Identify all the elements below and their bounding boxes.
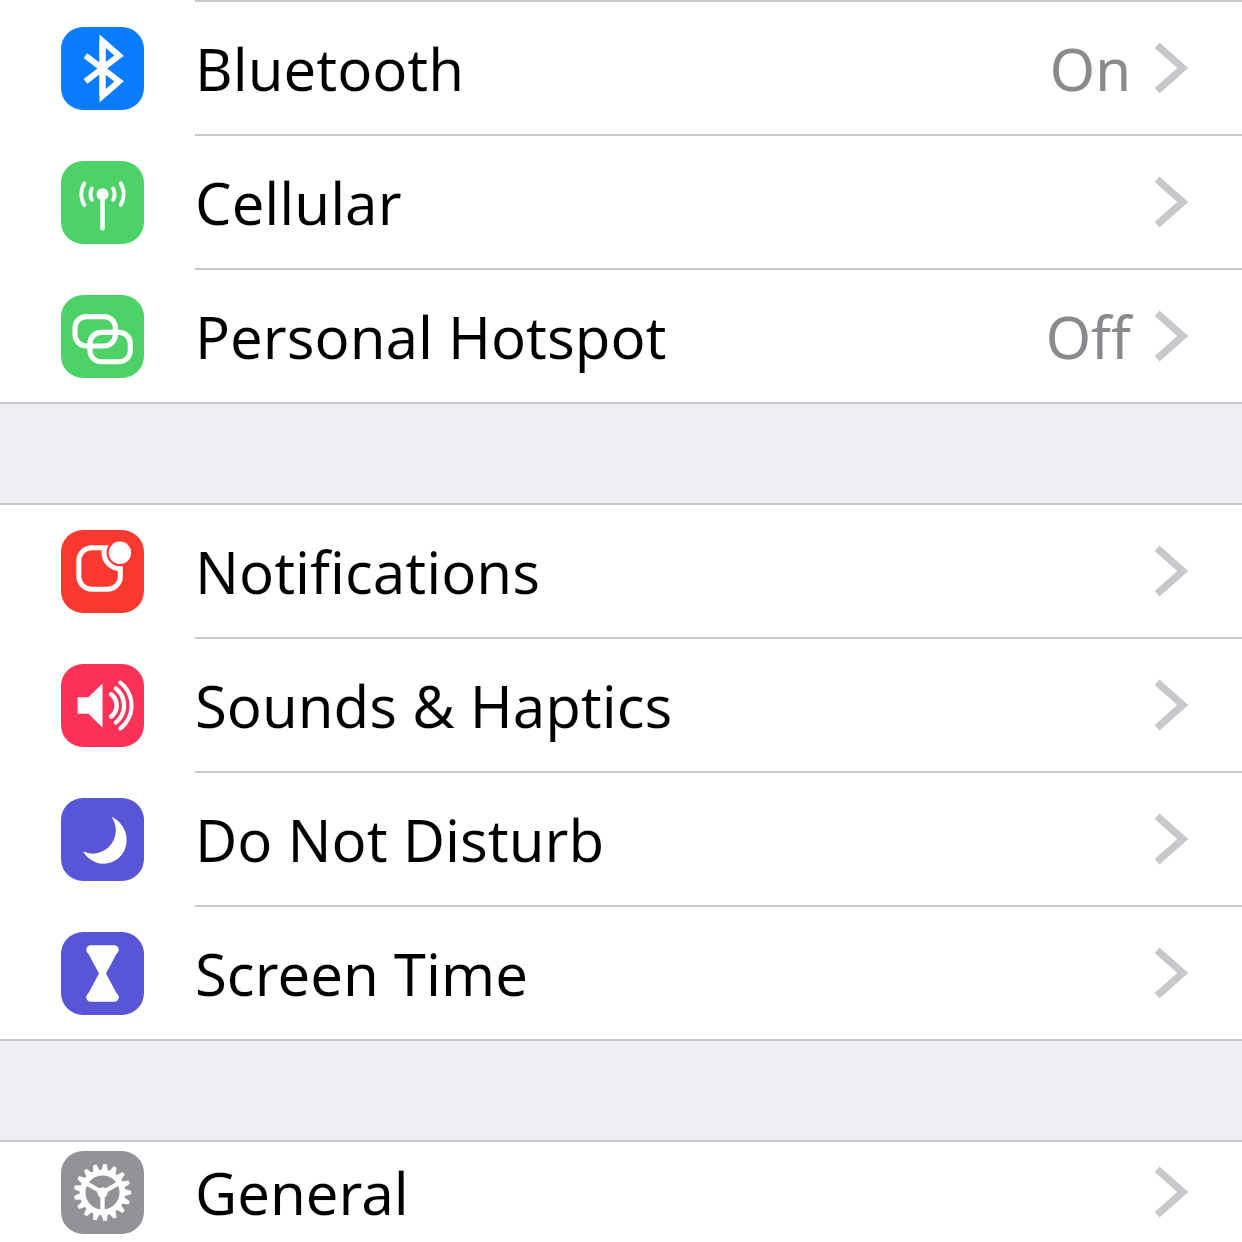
button[interactable]: Notifications [0,505,1242,637]
other: General [61,1151,144,1234]
staticText: Personal Hotspot [195,297,667,376]
button[interactable]: Bluetooth [0,2,1242,134]
staticText: Off [1045,297,1131,376]
other: Bluetooth [61,27,144,110]
other: Do Not Disturb [61,798,144,881]
staticText: Notifications [195,532,540,611]
button[interactable]: Sounds and Haptics [0,639,1242,771]
button[interactable]: Cellular [0,136,1242,268]
staticText: Bluetooth [195,29,465,108]
staticText: Sounds & Haptics [195,666,673,745]
other: Notifications [61,530,144,613]
staticText: On [1049,29,1131,108]
other: Cellular [61,161,144,244]
button[interactable]: General [0,1142,1242,1242]
staticText: General [195,1153,409,1232]
button[interactable]: Personal Hotspot [0,270,1242,402]
staticText: Screen Time [195,934,528,1013]
button[interactable]: Do Not Disturb [0,773,1242,905]
other: Sounds and Haptics [61,664,144,747]
other: Personal Hotspot [61,295,144,378]
button[interactable]: Screen Time [0,907,1242,1039]
staticText: Cellular [195,163,402,242]
other: Screen Time [61,932,144,1015]
staticText: Do Not Disturb [195,800,605,879]
